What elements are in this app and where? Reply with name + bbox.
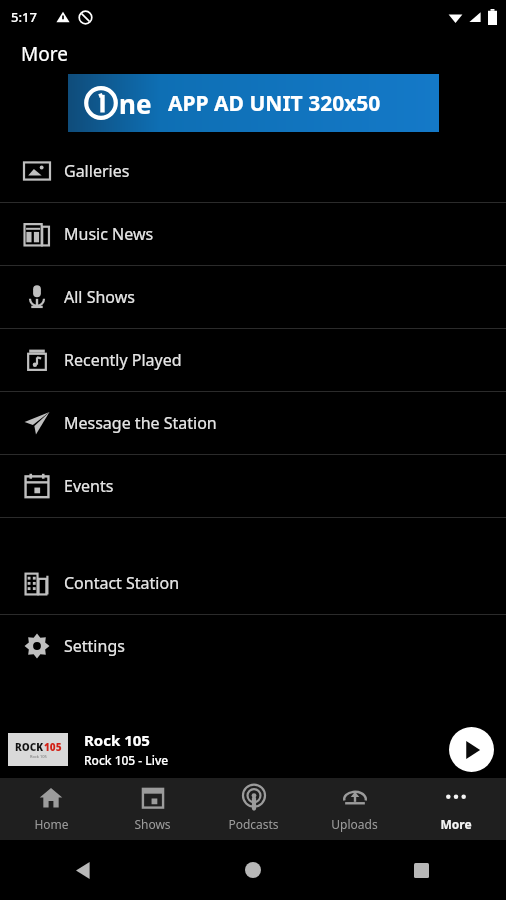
other: Back — [76, 862, 93, 879]
button[interactable]: Shows — [102, 778, 203, 840]
button[interactable]: Contact Station — [0, 552, 506, 614]
staticText: More — [21, 41, 68, 67]
staticText: Music News — [64, 223, 154, 245]
button[interactable]: Message the Station — [0, 392, 506, 454]
staticText: Shows — [134, 816, 171, 832]
staticText: 105 — [44, 740, 62, 754]
staticText: Contact Station — [64, 572, 180, 594]
staticText: Rock 105 — [30, 754, 47, 759]
button[interactable]: Podcasts — [203, 778, 304, 840]
button[interactable]: Settings — [0, 615, 506, 677]
button[interactable]: Play — [449, 727, 494, 772]
button[interactable]: Recently Played — [0, 329, 506, 391]
staticText: Events — [64, 475, 114, 497]
staticText: 5:17 — [11, 8, 37, 26]
staticText: ROCK — [15, 740, 44, 754]
staticText: ne — [119, 86, 152, 121]
button[interactable]: Events — [0, 455, 506, 517]
staticText: Rock 105 — [84, 730, 150, 750]
staticText: Uploads — [331, 816, 378, 832]
staticText: Podcasts — [228, 816, 279, 832]
button[interactable]: Home — [0, 778, 102, 840]
other: Recents — [414, 863, 429, 878]
button[interactable]: Music News — [0, 203, 506, 265]
button[interactable]: ROCK — [0, 720, 506, 778]
staticText: Home — [34, 816, 69, 832]
staticText: Galleries — [64, 160, 130, 182]
button[interactable]: Galleries — [0, 140, 506, 202]
staticText: All Shows — [64, 286, 135, 308]
staticText: Recently Played — [64, 349, 182, 371]
staticText: Message the Station — [64, 412, 217, 434]
staticText: More — [440, 816, 472, 832]
button[interactable]: ne — [68, 74, 439, 132]
staticText: APP AD UNIT 320x50 — [168, 89, 381, 118]
button[interactable]: All Shows — [0, 266, 506, 328]
button[interactable]: Uploads — [304, 778, 405, 840]
button[interactable]: More — [405, 778, 506, 840]
other: Home — [245, 862, 261, 878]
staticText: Rock 105 - Live — [84, 752, 169, 768]
staticText: Settings — [64, 635, 125, 657]
